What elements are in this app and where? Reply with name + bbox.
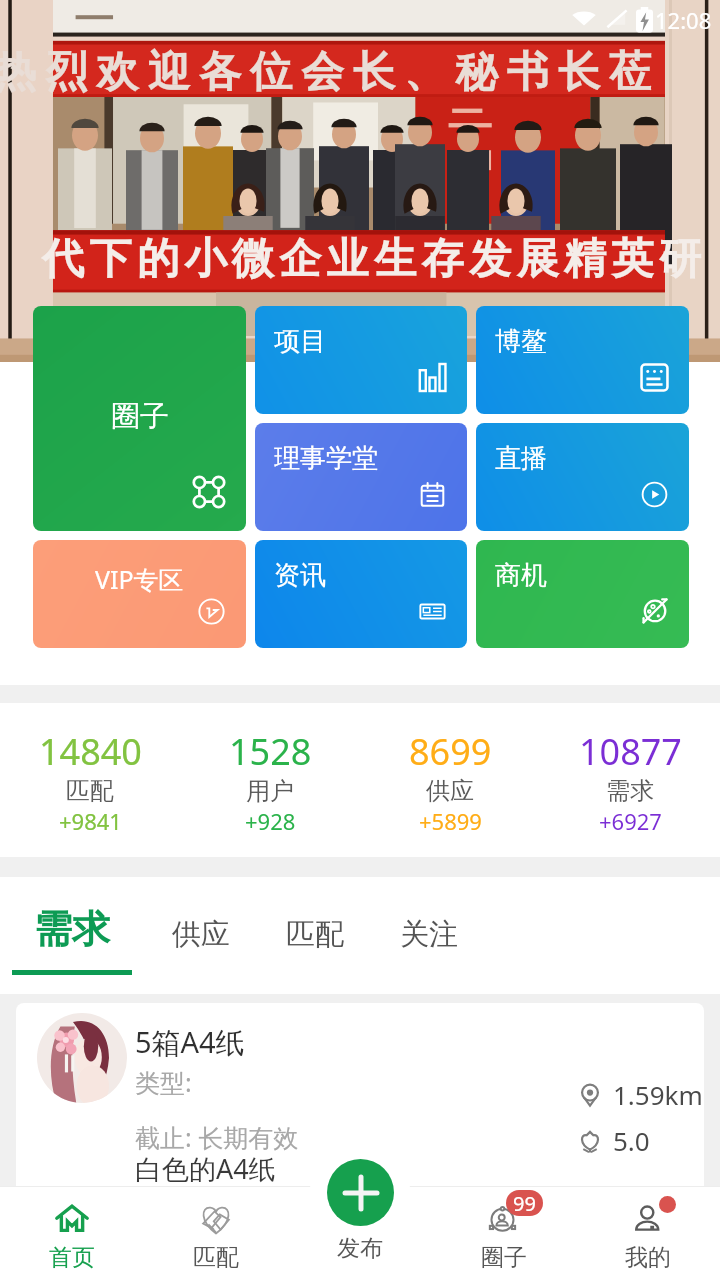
staticText: 1528 — [229, 727, 312, 776]
staticText: 供应 — [172, 916, 230, 953]
staticText: 14840 — [39, 727, 142, 776]
staticText: 资讯 — [274, 559, 326, 592]
button[interactable]: 首页 — [0, 1186, 144, 1280]
button[interactable]: 资讯 — [255, 540, 467, 648]
staticText: 需求 — [34, 905, 110, 953]
button[interactable]: 圈子 — [33, 306, 246, 531]
staticText: 5箱A4纸 — [135, 1022, 245, 1062]
staticText: 截止: 长期有效 — [135, 1120, 299, 1154]
button[interactable]: 理事学堂 — [255, 423, 467, 531]
staticText: 需求 — [606, 776, 654, 806]
staticText: 我的 — [625, 1243, 671, 1272]
button[interactable]: 关注 — [372, 877, 486, 994]
staticText: +928 — [245, 806, 296, 836]
staticText: 理事学堂 — [274, 442, 378, 475]
staticText: 发布 — [337, 1234, 383, 1263]
staticText: 类型: — [135, 1065, 192, 1099]
button[interactable]: 商机 — [476, 540, 689, 648]
staticText: 匹配 — [66, 776, 114, 806]
button[interactable]: 99 — [432, 1186, 576, 1280]
staticText: 供应 — [426, 776, 474, 806]
staticText: 1.59km — [613, 1077, 703, 1112]
staticText: 白色的A4纸 — [135, 1150, 276, 1187]
staticText: +9841 — [59, 806, 122, 836]
staticText: 圈子 — [481, 1243, 527, 1272]
staticText: 99 — [513, 1190, 536, 1216]
staticText: 代下的小微企业生存发展精英研 — [42, 233, 707, 286]
staticText: VIP专区 — [95, 562, 184, 596]
staticText: 首页 — [49, 1243, 95, 1272]
staticText: 项目 — [274, 325, 326, 358]
button[interactable]: 项目 — [255, 306, 467, 414]
staticText: 8699 — [409, 727, 492, 776]
staticText: 直播 — [495, 442, 547, 475]
button[interactable]: 供应 — [144, 877, 258, 994]
button[interactable]: 需求 — [0, 877, 144, 994]
staticText: 热烈欢迎各位会长、秘书长莅 — [0, 46, 661, 99]
staticText: +5899 — [419, 806, 482, 836]
staticText: 10877 — [579, 727, 682, 776]
staticText: 匹配 — [193, 1243, 239, 1272]
button[interactable]: 博鳌 — [476, 306, 689, 414]
staticText: 12:08 — [655, 5, 712, 35]
staticText: 博鳌 — [495, 325, 547, 358]
staticText: 5.0 — [613, 1123, 650, 1158]
staticText: 商机 — [495, 559, 547, 592]
staticText: 关注 — [400, 916, 458, 953]
button[interactable]: 5箱A4纸 — [16, 1003, 704, 1223]
button[interactable]: 匹配 — [258, 877, 372, 994]
staticText: 匹配 — [286, 916, 344, 953]
staticText: 用户 — [246, 776, 294, 806]
button[interactable]: 匹配 — [144, 1186, 288, 1280]
button[interactable]: VIP专区 — [33, 540, 246, 648]
button[interactable]: 直播 — [476, 423, 689, 531]
button[interactable]: 我的 — [576, 1186, 720, 1280]
staticText: 圈子 — [111, 398, 169, 435]
button[interactable]: 发布 — [327, 1159, 394, 1226]
staticText: +6927 — [599, 806, 662, 836]
